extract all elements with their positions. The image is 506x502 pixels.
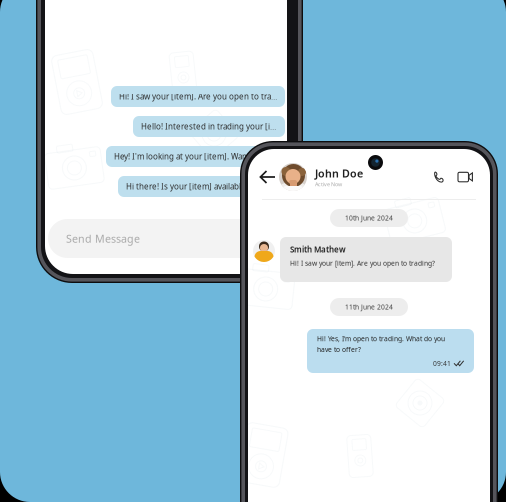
staticText: John Doe (315, 166, 363, 181)
staticText: have to offer? (317, 345, 361, 354)
staticText: Send Message (66, 231, 140, 246)
staticText: Hey! I'm looking at your [item]. Want to… (114, 151, 277, 162)
button[interactable]: Send Message (48, 219, 285, 258)
staticText: Hi there! Is your [item] available for t… (126, 181, 277, 192)
staticText: Hi! I saw your [item]. Are you open to t… (290, 259, 435, 267)
staticText: 10th June 2024 (345, 214, 393, 222)
staticText: Hello! Interested in trading your [item]… (141, 121, 277, 132)
staticText: Smith Mathew (290, 244, 346, 255)
button[interactable]: Video call (458, 162, 473, 192)
staticText: Hi! I saw your [item]. Are you open to t… (119, 91, 277, 102)
button[interactable]: Back (261, 162, 274, 192)
staticText: Hi! Yes, I'm open to trading. What do yo… (317, 334, 445, 343)
staticText: Active Now (315, 180, 342, 188)
button[interactable]: Voice call (433, 162, 444, 192)
staticText: 09:41 (433, 359, 451, 368)
staticText: 11th June 2024 (345, 303, 393, 311)
